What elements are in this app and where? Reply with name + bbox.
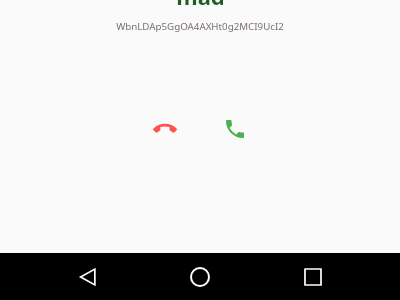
button[interactable]: Accept call <box>213 107 257 151</box>
button[interactable]: Decline call <box>143 107 187 151</box>
staticText: WbnLDAp5GgOA4AXHt0g2MCI9UcI2 <box>116 20 284 33</box>
button[interactable]: Back <box>60 253 116 300</box>
button[interactable]: Home <box>172 253 228 300</box>
staticText: mad <box>176 0 225 11</box>
button[interactable]: Recent apps <box>284 253 340 300</box>
